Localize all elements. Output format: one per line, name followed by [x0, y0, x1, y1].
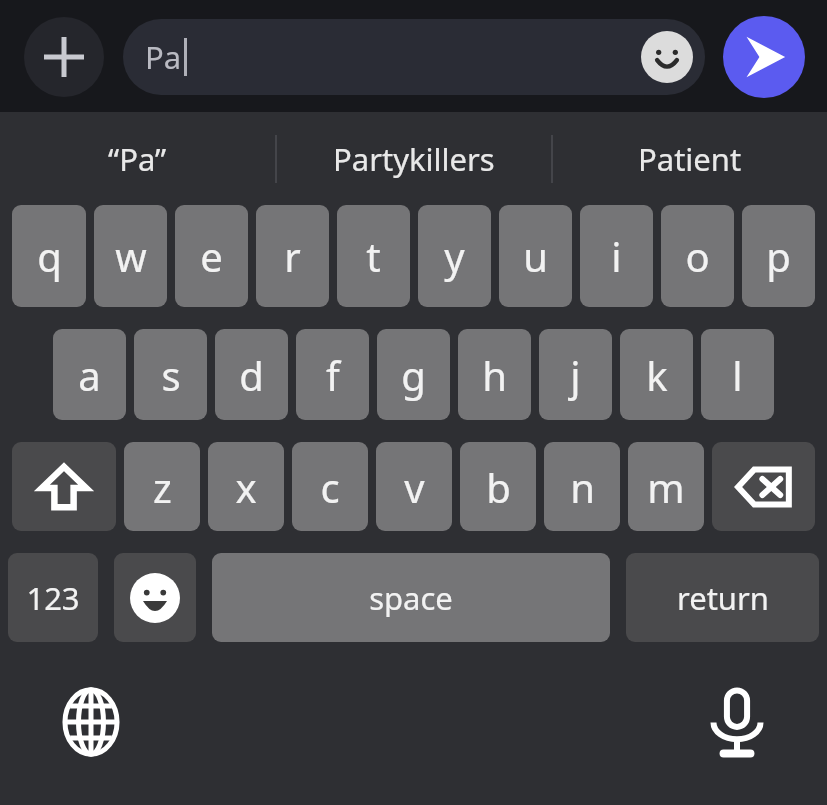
button[interactable]: 123 [8, 553, 98, 642]
staticText: 123 [26, 577, 80, 619]
button[interactable]: Add attachment [24, 17, 104, 97]
button[interactable]: Pa [123, 19, 705, 95]
button[interactable]: return [626, 553, 819, 642]
staticText: t [366, 229, 381, 283]
button[interactable]: m [628, 442, 704, 531]
staticText: return [677, 577, 769, 619]
button[interactable]: g [377, 329, 450, 420]
button[interactable]: t [337, 205, 410, 307]
staticText: d [239, 348, 264, 402]
staticText: u [523, 229, 548, 283]
staticText: v [404, 460, 425, 514]
staticText: k [646, 348, 668, 402]
staticText: i [611, 229, 622, 283]
staticText: y [444, 229, 465, 283]
button[interactable]: “Pa” [0, 112, 275, 205]
button[interactable]: w [94, 205, 167, 307]
button[interactable]: z [124, 442, 200, 531]
staticText: p [766, 229, 791, 283]
button[interactable]: j [539, 329, 612, 420]
staticText: o [685, 229, 710, 283]
button[interactable]: e [175, 205, 248, 307]
button[interactable]: Emoji [641, 31, 693, 83]
staticText: space [369, 577, 453, 619]
button[interactable]: l [701, 329, 774, 420]
button[interactable]: y [418, 205, 491, 307]
staticText: g [401, 348, 426, 402]
button[interactable]: space [212, 553, 610, 642]
button[interactable]: d [215, 329, 288, 420]
button[interactable]: b [460, 442, 536, 531]
staticText: b [486, 460, 511, 514]
button[interactable]: Shift [12, 442, 116, 531]
staticText: z [153, 460, 172, 514]
button[interactable]: i [580, 205, 653, 307]
button[interactable]: s [134, 329, 207, 420]
staticText: m [647, 460, 685, 514]
button[interactable]: k [620, 329, 693, 420]
button[interactable]: v [376, 442, 452, 531]
staticText: Partykillers [333, 138, 495, 180]
staticText: e [200, 229, 223, 283]
staticText: r [284, 229, 301, 283]
staticText: h [482, 348, 507, 402]
staticText: n [570, 460, 595, 514]
staticText: s [161, 348, 181, 402]
staticText: c [320, 460, 340, 514]
staticText: a [78, 348, 101, 402]
button[interactable]: Patient [553, 112, 827, 205]
button[interactable]: h [458, 329, 531, 420]
button[interactable]: c [292, 442, 368, 531]
staticText: j [570, 348, 581, 402]
button[interactable]: n [544, 442, 620, 531]
staticText: w [115, 229, 147, 283]
button[interactable]: Emoji keyboard [114, 553, 196, 642]
button[interactable]: q [12, 205, 86, 307]
staticText: Pa [145, 36, 182, 78]
staticText: l [732, 348, 743, 402]
staticText: “Pa” [108, 138, 167, 180]
staticText: Patient [638, 138, 742, 180]
staticText: f [326, 348, 340, 402]
button[interactable]: Change keyboard language [56, 687, 126, 757]
button[interactable]: p [742, 205, 815, 307]
staticText: q [37, 229, 62, 283]
button[interactable]: x [208, 442, 284, 531]
staticText: x [235, 460, 257, 514]
button[interactable]: u [499, 205, 572, 307]
button[interactable]: a [53, 329, 126, 420]
button[interactable]: Backspace [712, 442, 815, 531]
button[interactable]: Send [723, 16, 805, 98]
button[interactable]: Partykillers [277, 112, 551, 205]
button[interactable]: Voice input [702, 687, 772, 757]
button[interactable]: o [661, 205, 734, 307]
button[interactable]: f [296, 329, 369, 420]
button[interactable]: r [256, 205, 329, 307]
